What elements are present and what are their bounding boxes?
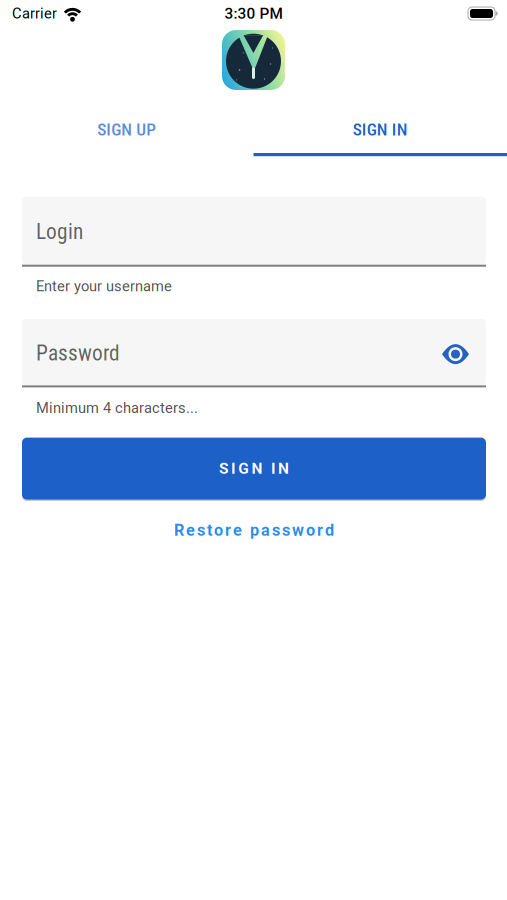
staticText: I: [231, 459, 236, 478]
staticText: SIGN IN: [353, 119, 408, 140]
staticText: I: [271, 459, 276, 478]
staticText: N: [278, 459, 289, 478]
staticText: N: [251, 459, 262, 478]
button[interactable]: Password: [22, 319, 486, 387]
button[interactable]: Login: [22, 197, 486, 267]
staticText: Enter your username: [36, 278, 172, 295]
staticText: G: [238, 459, 249, 478]
button[interactable]: S: [22, 438, 486, 500]
staticText: Login: [36, 219, 83, 244]
button[interactable]: SIGN IN: [253, 119, 507, 140]
button[interactable]: Restore password: [22, 521, 486, 540]
staticText: 3:30 PM: [224, 4, 282, 22]
staticText: Restore password: [174, 521, 334, 540]
staticText: SIGN UP: [97, 119, 156, 140]
staticText: Minimum 4 characters...: [36, 399, 198, 417]
staticText: Carrier: [12, 5, 57, 22]
button[interactable]: SIGN UP: [0, 119, 253, 140]
staticText: S: [219, 459, 229, 478]
staticText: Password: [36, 341, 120, 366]
button[interactable]: [442, 342, 486, 362]
